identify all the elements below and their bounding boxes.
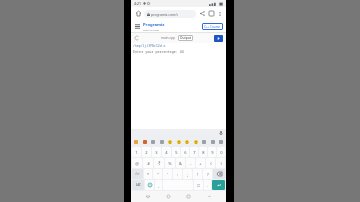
button[interactable]: C++ Course — [202, 23, 223, 30]
button[interactable]: Output — [178, 35, 193, 41]
staticText: ( — [210, 161, 212, 166]
button[interactable]: . — [204, 180, 211, 190]
button[interactable]: Emoji 8 — [201, 139, 207, 145]
button[interactable]: More options — [216, 10, 223, 17]
staticText: % — [168, 161, 172, 166]
staticText: /tmp/1jJ3PBrI2d.o — [133, 44, 166, 48]
button[interactable]: programiz.com/c — [144, 10, 196, 18]
button[interactable]: 8 — [199, 147, 207, 157]
button[interactable]: ! — [193, 169, 202, 179]
staticText: 2 — [145, 150, 148, 155]
button[interactable]: @ — [132, 158, 142, 168]
button[interactable]: ; — [183, 169, 192, 179]
button[interactable]: , — [155, 180, 162, 190]
button[interactable]: Tabs — [207, 9, 216, 18]
staticText: Enter your percentage: 44 — [133, 49, 184, 54]
staticText: ' — [167, 172, 168, 177]
button[interactable]: 7 — [190, 147, 198, 157]
staticText: ! — [197, 172, 199, 177]
staticText: =\< — [135, 172, 140, 176]
button[interactable]: 0 — [217, 147, 225, 157]
button[interactable]: Voice input — [218, 130, 224, 136]
button[interactable]: ABC — [132, 180, 144, 190]
button[interactable]: Emoji 3 — [159, 139, 165, 145]
button[interactable]: Emoji 4 — [167, 139, 173, 145]
staticText: Learn to Code — [143, 28, 159, 31]
button[interactable]: Recents — [184, 192, 193, 201]
staticText: Output — [180, 36, 191, 40]
button[interactable]: Emoji 5 — [176, 139, 182, 145]
button[interactable]: Keyboard options — [194, 180, 203, 190]
staticText: 8 — [202, 150, 205, 155]
button[interactable]: : — [173, 169, 182, 179]
staticText: @ — [135, 161, 139, 166]
staticText: # — [147, 161, 150, 166]
staticText: ₹ — [158, 161, 161, 166]
button[interactable]: 9 — [208, 147, 216, 157]
button[interactable]: Home — [134, 9, 143, 18]
button[interactable]: Emoji 1 — [142, 139, 148, 145]
button[interactable]: Emoji 7 — [193, 139, 199, 145]
button[interactable]: 1 — [132, 147, 141, 157]
button[interactable]: Home — [164, 192, 173, 201]
button[interactable]: + — [196, 158, 205, 168]
button[interactable]: Emoji 10 — [218, 139, 224, 145]
button[interactable]: ₹ — [154, 158, 164, 168]
button[interactable]: Emoji 9 — [210, 139, 216, 145]
button[interactable]: % — [165, 158, 175, 168]
staticText: - — [190, 161, 192, 166]
button[interactable]: Menu — [134, 23, 141, 30]
staticText: + — [199, 161, 202, 166]
staticText: 6 — [184, 150, 187, 155]
button[interactable]: 2 — [142, 147, 151, 157]
button[interactable]: * — [144, 169, 152, 179]
button[interactable]: ' — [163, 169, 172, 179]
button[interactable]: Emoji 2 — [150, 139, 156, 145]
button[interactable]: & — [176, 158, 185, 168]
button[interactable]: Run — [214, 35, 223, 42]
button[interactable]: ? — [203, 169, 212, 179]
button[interactable]: Refresh — [134, 35, 140, 41]
button[interactable]: 4 — [162, 147, 171, 157]
button[interactable]: Emoji 6 — [184, 139, 190, 145]
staticText: 7 — [193, 150, 196, 155]
staticText: & — [179, 161, 182, 166]
button[interactable]: ) — [216, 158, 225, 168]
staticText: ; — [187, 172, 189, 177]
staticText: C++ Course — [204, 25, 221, 29]
staticText: ) — [220, 161, 222, 166]
button[interactable]: " — [153, 169, 162, 179]
staticText: 0 — [220, 150, 223, 155]
button[interactable]: 6 — [181, 147, 189, 157]
staticText: 4 — [165, 150, 168, 155]
staticText: 9 — [211, 150, 214, 155]
button[interactable]: Emoji 0 — [133, 139, 139, 145]
button[interactable]: 5 — [172, 147, 180, 157]
staticText: : — [177, 172, 179, 177]
staticText: , — [158, 183, 160, 188]
staticText: 5 — [175, 150, 178, 155]
button[interactable]: Emoji — [145, 180, 154, 190]
staticText: programiz.com/c — [151, 12, 179, 17]
staticText: * — [147, 172, 150, 177]
button[interactable]: Back — [143, 192, 152, 201]
staticText: 1 — [135, 150, 138, 155]
button[interactable]: Share — [198, 9, 207, 18]
button[interactable]: # — [143, 158, 153, 168]
staticText: ? — [207, 172, 209, 177]
staticText: . — [207, 183, 209, 188]
staticText: main.cpp — [161, 36, 175, 40]
button[interactable]: 3 — [152, 147, 161, 157]
button[interactable]: Hide keyboard — [205, 192, 214, 201]
button[interactable]: Enter — [212, 180, 225, 190]
staticText: Programiz — [143, 22, 165, 28]
staticText: " — [157, 172, 159, 177]
staticText: 4:21 — [134, 1, 141, 6]
button[interactable]: =\< — [132, 169, 143, 179]
button[interactable]: Backspace — [213, 169, 225, 179]
staticText: 3 — [155, 150, 158, 155]
button[interactable]: - — [186, 158, 195, 168]
button[interactable]: ( — [206, 158, 215, 168]
staticText: ABC — [136, 183, 141, 187]
